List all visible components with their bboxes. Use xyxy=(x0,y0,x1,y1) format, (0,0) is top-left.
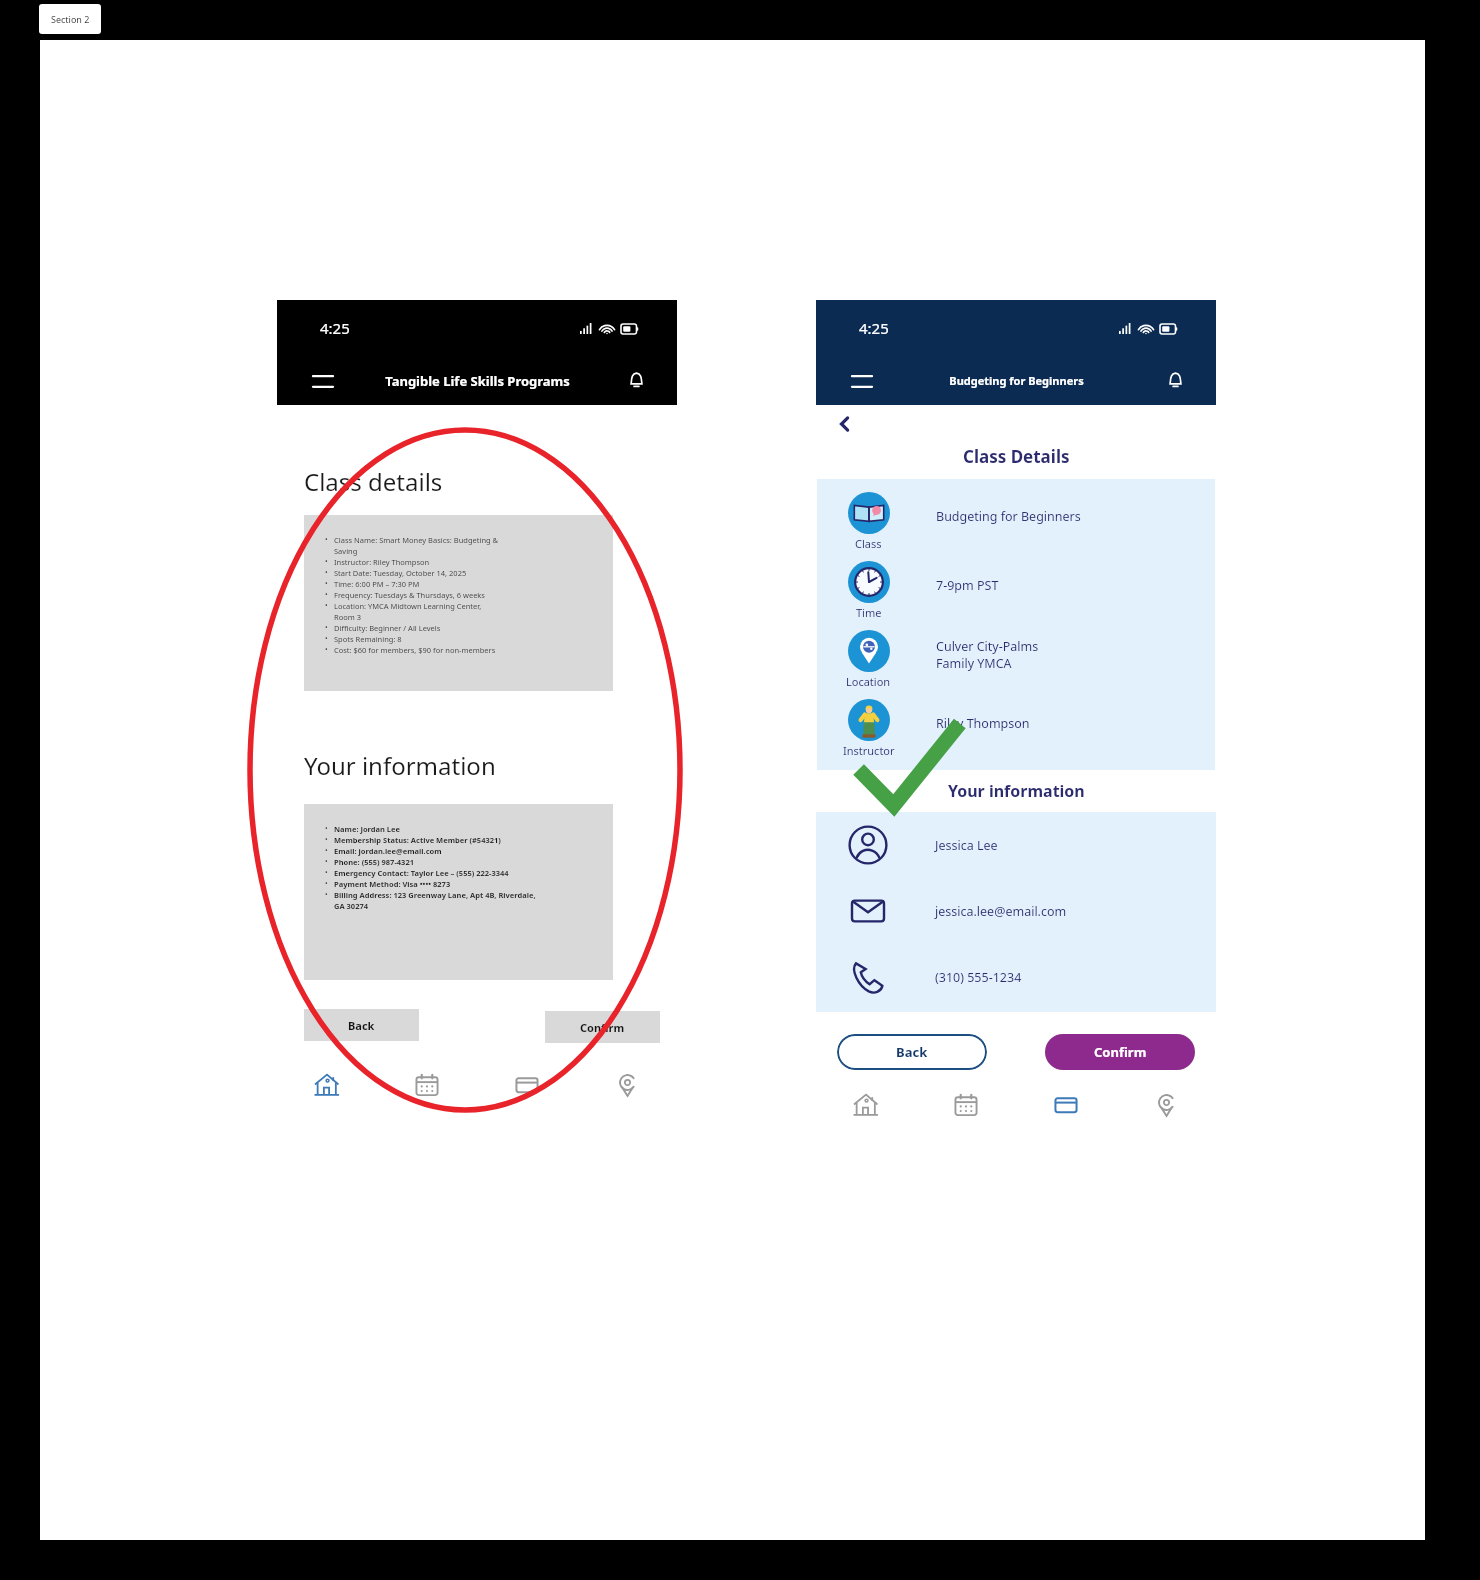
staticText: Phone: (555) 987-4321 xyxy=(334,857,414,867)
staticText: jessica.lee@email.com xyxy=(935,903,1067,920)
staticText: 7-9pm PST xyxy=(936,577,999,594)
staticText: Jessica Lee xyxy=(935,837,998,854)
staticText: Confirm xyxy=(580,1020,625,1035)
button[interactable]: Home xyxy=(816,1090,916,1120)
button[interactable]: Notifications xyxy=(623,368,649,394)
button[interactable]: Instructor xyxy=(817,694,1215,763)
button[interactable]: Calendar xyxy=(916,1090,1016,1120)
staticText: Riley Thompson xyxy=(936,715,1030,732)
button[interactable]: Back xyxy=(834,413,856,435)
staticText: • xyxy=(325,879,334,889)
button[interactable]: Back xyxy=(304,1009,419,1041)
button[interactable]: Time xyxy=(817,556,1215,625)
staticText: Confirm xyxy=(1094,1043,1147,1061)
button[interactable]: Locations xyxy=(577,1063,677,1107)
button[interactable]: Location xyxy=(817,625,1215,694)
button[interactable]: Section 2 xyxy=(39,4,101,34)
staticText: • xyxy=(325,568,334,578)
staticText: Culver City-Palms xyxy=(936,638,1039,655)
staticText: Emergency Contact: Taylor Lee – (555) 22… xyxy=(334,868,509,878)
staticText: Back xyxy=(896,1043,928,1061)
staticText: • xyxy=(325,535,334,545)
button[interactable]: Locations xyxy=(1116,1090,1216,1120)
staticText: • xyxy=(325,890,334,900)
staticText: Your information xyxy=(948,780,1085,802)
staticText: (310) 555-1234 xyxy=(935,969,1022,986)
button[interactable]: Calendar xyxy=(377,1063,477,1107)
staticText: Start Date: Tuesday, October 14, 2025 xyxy=(334,568,467,578)
staticText: Budgeting for Beginners xyxy=(949,373,1084,388)
staticText: • xyxy=(325,557,334,567)
staticText: Room 3 xyxy=(334,612,361,622)
button[interactable]: Menu xyxy=(849,368,875,394)
staticText: Instructor xyxy=(843,743,895,758)
staticText: Instructor: Riley Thompson xyxy=(334,557,430,567)
staticText: Class Details xyxy=(963,445,1070,468)
staticText: Section 2 xyxy=(51,13,90,25)
button[interactable]: Jessica Lee xyxy=(816,812,1216,878)
button[interactable]: Back xyxy=(837,1034,987,1070)
button[interactable]: jessica.lee@email.com xyxy=(816,878,1216,944)
staticText: • xyxy=(325,645,334,655)
staticText: GA 30274 xyxy=(334,901,369,911)
staticText: Payment Method: Visa •••• 8273 xyxy=(334,879,451,889)
staticText: Your information xyxy=(304,749,496,782)
staticText: • xyxy=(325,857,334,867)
staticText: Difficulty: Beginner / All Levels xyxy=(334,623,441,633)
button[interactable]: Confirm xyxy=(1045,1034,1195,1070)
button[interactable]: Menu xyxy=(310,368,336,394)
staticText: Class details xyxy=(304,465,443,498)
staticText: Time xyxy=(856,605,882,620)
staticText: • xyxy=(325,846,334,856)
staticText: Time: 6:00 PM – 7:30 PM xyxy=(334,579,420,589)
staticText: Back xyxy=(348,1018,375,1033)
staticText: Class xyxy=(855,536,882,551)
staticText: • xyxy=(325,590,334,600)
staticText: Billing Address: 123 Greenway Lane, Apt … xyxy=(334,890,536,900)
button[interactable]: (310) 555-1234 xyxy=(816,944,1216,1010)
staticText: Email: jordan.lee@email.com xyxy=(334,846,442,856)
staticText: • xyxy=(325,601,334,611)
staticText: Membership Status: Active Member (#54321… xyxy=(334,835,501,845)
staticText: Location xyxy=(846,674,891,689)
staticText: Spots Remaining: 8 xyxy=(334,634,402,644)
staticText: • xyxy=(325,634,334,644)
staticText: Saving xyxy=(334,546,358,556)
staticText: • xyxy=(325,835,334,845)
button[interactable]: Class xyxy=(817,487,1215,556)
staticText: Class Name: Smart Money Basics: Budgetin… xyxy=(334,535,499,545)
button[interactable]: Cards xyxy=(477,1063,577,1107)
staticText: Cost: $60 for members, $90 for non-membe… xyxy=(334,645,496,655)
staticText: Budgeting for Beginners xyxy=(936,508,1081,525)
button[interactable]: Notifications xyxy=(1162,368,1188,394)
staticText: Location: YMCA Midtown Learning Center, xyxy=(334,601,482,611)
staticText: Name: Jordan Lee xyxy=(334,824,401,834)
staticText: Family YMCA xyxy=(936,655,1012,672)
staticText: 4:25 xyxy=(320,318,350,338)
staticText: 4:25 xyxy=(859,318,889,338)
button[interactable]: Cards xyxy=(1016,1090,1116,1120)
staticText: • xyxy=(325,868,334,878)
staticText: Tangible Life Skills Programs xyxy=(385,372,570,390)
button[interactable]: Home xyxy=(277,1063,377,1107)
staticText: • xyxy=(325,623,334,633)
button[interactable]: Confirm xyxy=(545,1011,660,1043)
staticText: • xyxy=(325,579,334,589)
staticText: Frequency: Tuesdays & Thursdays, 6 weeks xyxy=(334,590,485,600)
staticText: • xyxy=(325,824,334,834)
